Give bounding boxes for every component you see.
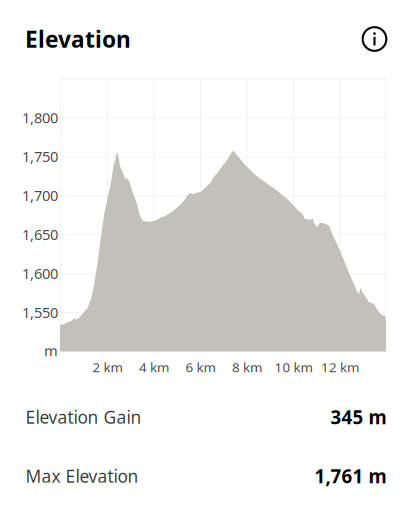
staticText: 1,650	[22, 225, 58, 244]
staticText: 2 km	[92, 358, 122, 376]
staticText: Elevation	[25, 24, 131, 54]
staticText: 1,750	[22, 147, 58, 166]
staticText: 12 km	[321, 358, 359, 376]
staticText: 345 m	[330, 405, 386, 429]
staticText: 6 km	[185, 358, 215, 376]
staticText: 10 km	[274, 358, 312, 376]
staticText: 1,761 m	[314, 464, 386, 488]
button[interactable]: Information	[355, 19, 394, 58]
staticText: 8 km	[232, 358, 262, 376]
staticText: 4 km	[139, 358, 169, 376]
staticText: 1,600	[22, 263, 58, 283]
staticText: Max Elevation	[25, 464, 138, 487]
staticText: Elevation Gain	[25, 405, 141, 428]
staticText: 1,800	[22, 108, 58, 127]
staticText: 1,550	[22, 302, 58, 322]
staticText: 1,700	[22, 186, 58, 205]
staticText: m	[44, 341, 58, 360]
